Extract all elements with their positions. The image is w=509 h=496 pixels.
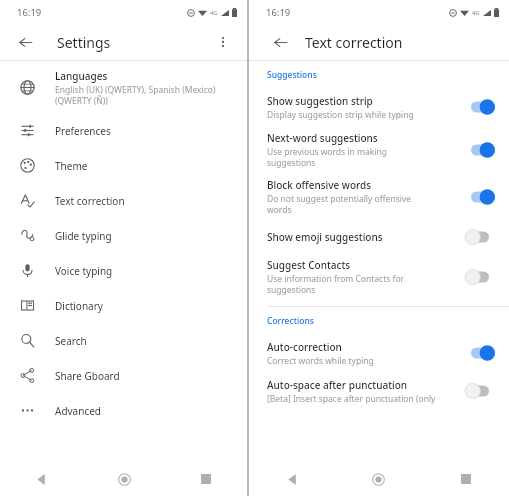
- staticText: 4G: [472, 9, 480, 16]
- button[interactable]: Advanced: [0, 393, 247, 428]
- staticText: Auto-space after punctuation: [267, 378, 408, 392]
- button[interactable]: Theme: [0, 148, 247, 183]
- staticText: Dictionary: [55, 299, 103, 313]
- button[interactable]: More options: [209, 28, 237, 56]
- button[interactable]: Block offensive words: [249, 173, 509, 220]
- staticText: Correct words while typing: [267, 355, 374, 367]
- staticText: Share Gboard: [55, 369, 120, 383]
- button[interactable]: Auto-correction: [249, 334, 509, 372]
- staticText: Advanced: [55, 404, 101, 418]
- button[interactable]: Share Gboard: [0, 358, 247, 393]
- staticText: Languages: [55, 69, 108, 83]
- staticText: Auto-correction: [267, 340, 342, 354]
- staticText: Search: [55, 334, 87, 348]
- button[interactable]: Preferences: [0, 113, 247, 148]
- staticText: 16:19: [266, 6, 291, 19]
- button[interactable]: Next-word suggestions: [249, 126, 509, 173]
- staticText: 4G: [210, 9, 218, 16]
- staticText: Show suggestion strip: [267, 94, 373, 108]
- staticText: Suggest Contacts: [267, 258, 351, 272]
- staticText: Text correction: [305, 33, 403, 52]
- button[interactable]: Back: [10, 27, 40, 57]
- staticText: Glide typing: [55, 229, 112, 243]
- staticText: Use information from Contacts for sugges…: [267, 273, 405, 295]
- staticText: 16:19: [17, 6, 42, 19]
- button[interactable]: Suggest Contacts: [249, 253, 509, 300]
- staticText: Show emoji suggestions: [267, 230, 383, 244]
- staticText: Display suggestion strip while typing: [267, 109, 414, 121]
- staticText: English (UK) (QWERTY), Spanish (Mexico) …: [55, 84, 216, 106]
- staticText: Next-word suggestions: [267, 131, 378, 145]
- staticText: Corrections: [267, 315, 314, 327]
- staticText: Do not suggest potentially offensive wor…: [267, 193, 412, 215]
- button[interactable]: Dictionary: [0, 288, 247, 323]
- button[interactable]: Auto-space after punctuation: [249, 372, 509, 410]
- button[interactable]: Back: [0, 462, 83, 496]
- staticText: Text correction: [55, 194, 125, 208]
- staticText: Voice typing: [55, 264, 113, 278]
- staticText: [Beta] Insert space after punctuation (o…: [267, 393, 436, 405]
- button[interactable]: Back: [265, 27, 295, 57]
- staticText: Use previous words in making suggestions: [267, 146, 387, 168]
- button[interactable]: Glide typing: [0, 218, 247, 253]
- staticText: Preferences: [55, 124, 111, 138]
- button[interactable]: Search: [0, 323, 247, 358]
- staticText: Theme: [55, 159, 88, 173]
- button[interactable]: Languages: [0, 61, 247, 113]
- button[interactable]: Home: [83, 462, 165, 496]
- button[interactable]: Back: [249, 462, 335, 496]
- button[interactable]: Home: [335, 462, 422, 496]
- button[interactable]: Recents: [165, 462, 247, 496]
- staticText: Settings: [57, 33, 111, 52]
- button[interactable]: Recents: [422, 462, 509, 496]
- button[interactable]: Text correction: [0, 183, 247, 218]
- button[interactable]: Voice typing: [0, 253, 247, 288]
- staticText: Block offensive words: [267, 178, 372, 192]
- button[interactable]: Show suggestion strip: [249, 88, 509, 126]
- staticText: Suggestions: [267, 69, 317, 81]
- button[interactable]: Show emoji suggestions: [249, 220, 509, 253]
